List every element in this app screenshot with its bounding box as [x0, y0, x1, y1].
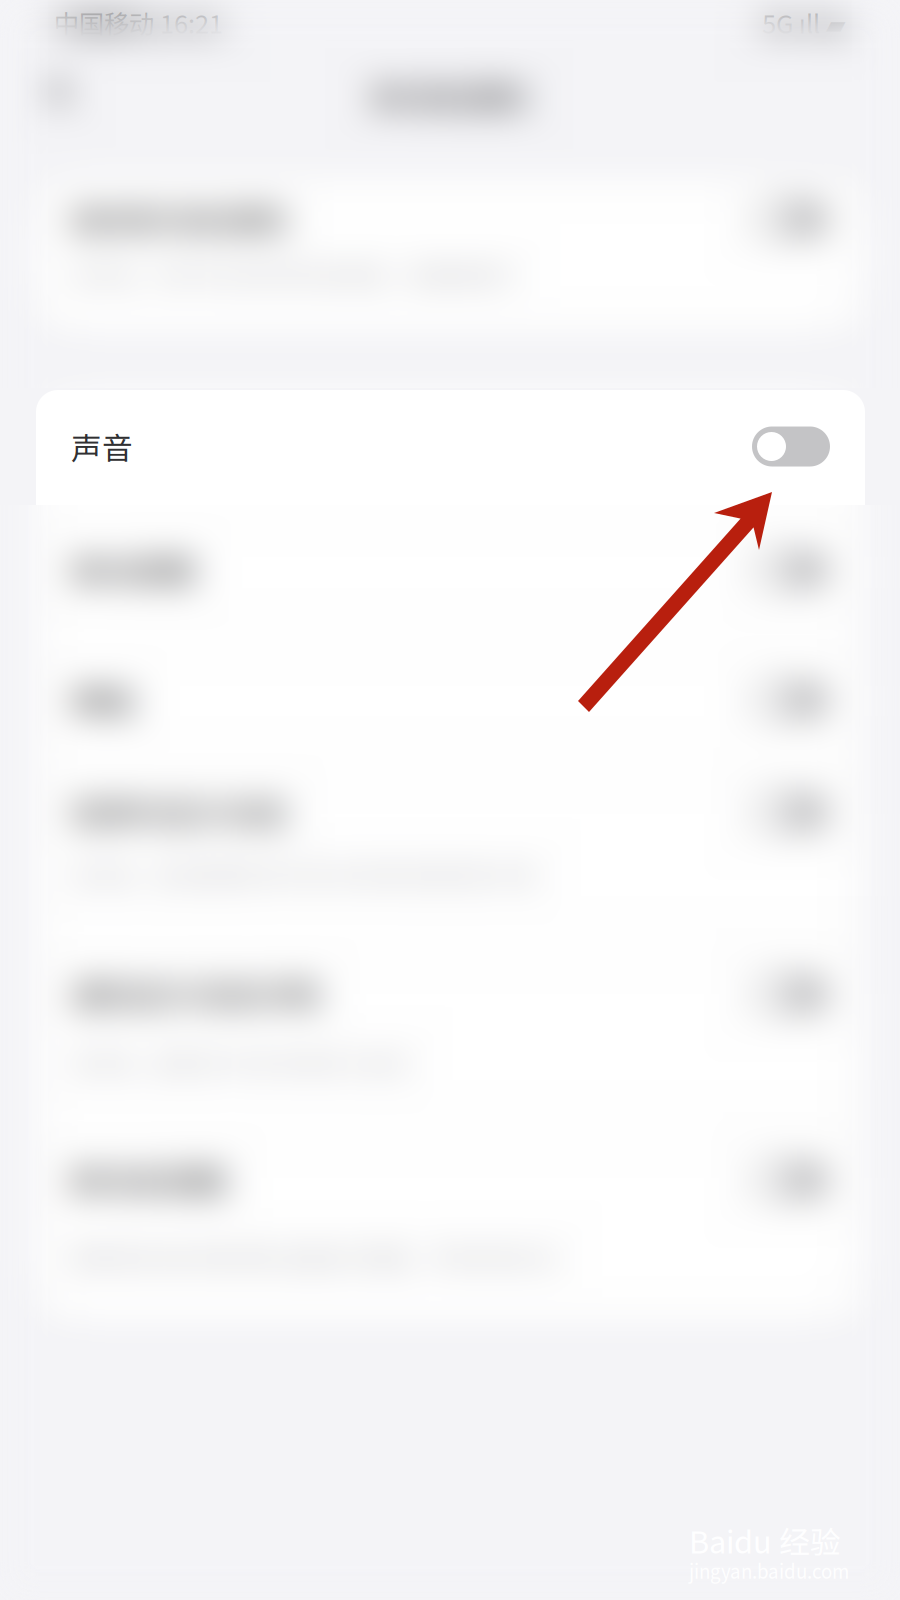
staticText: 群消息提醒: [71, 1158, 226, 1202]
staticText: 中国移动 16:21: [54, 4, 223, 41]
button[interactable]: 群消息提醒: [36, 1128, 865, 1232]
staticText: 横幅: [71, 678, 133, 722]
staticText: 5G ıll ▰: [762, 4, 845, 41]
button[interactable]: 横幅: [36, 636, 865, 764]
button[interactable]: 振动提醒: [36, 503, 865, 636]
staticText: 接收新消息通知: [71, 197, 288, 241]
staticText: 声音: [71, 424, 133, 469]
button[interactable]: 锁屏时显示消息: [36, 764, 865, 860]
button[interactable]: 声音: [36, 390, 865, 503]
staticText: jingyan.baidu.com: [689, 1557, 849, 1584]
button[interactable]: 接收新消息通知: [36, 176, 865, 262]
staticText: 振动提醒: [71, 547, 195, 592]
staticText: 锁屏时显示消息: [71, 790, 288, 834]
staticText: 新消息通知: [372, 74, 527, 118]
staticText: Baidu 经验: [689, 1518, 841, 1562]
button[interactable]: 通知显示消息详情: [36, 944, 865, 1044]
staticText: 通知显示消息详情: [71, 972, 319, 1016]
